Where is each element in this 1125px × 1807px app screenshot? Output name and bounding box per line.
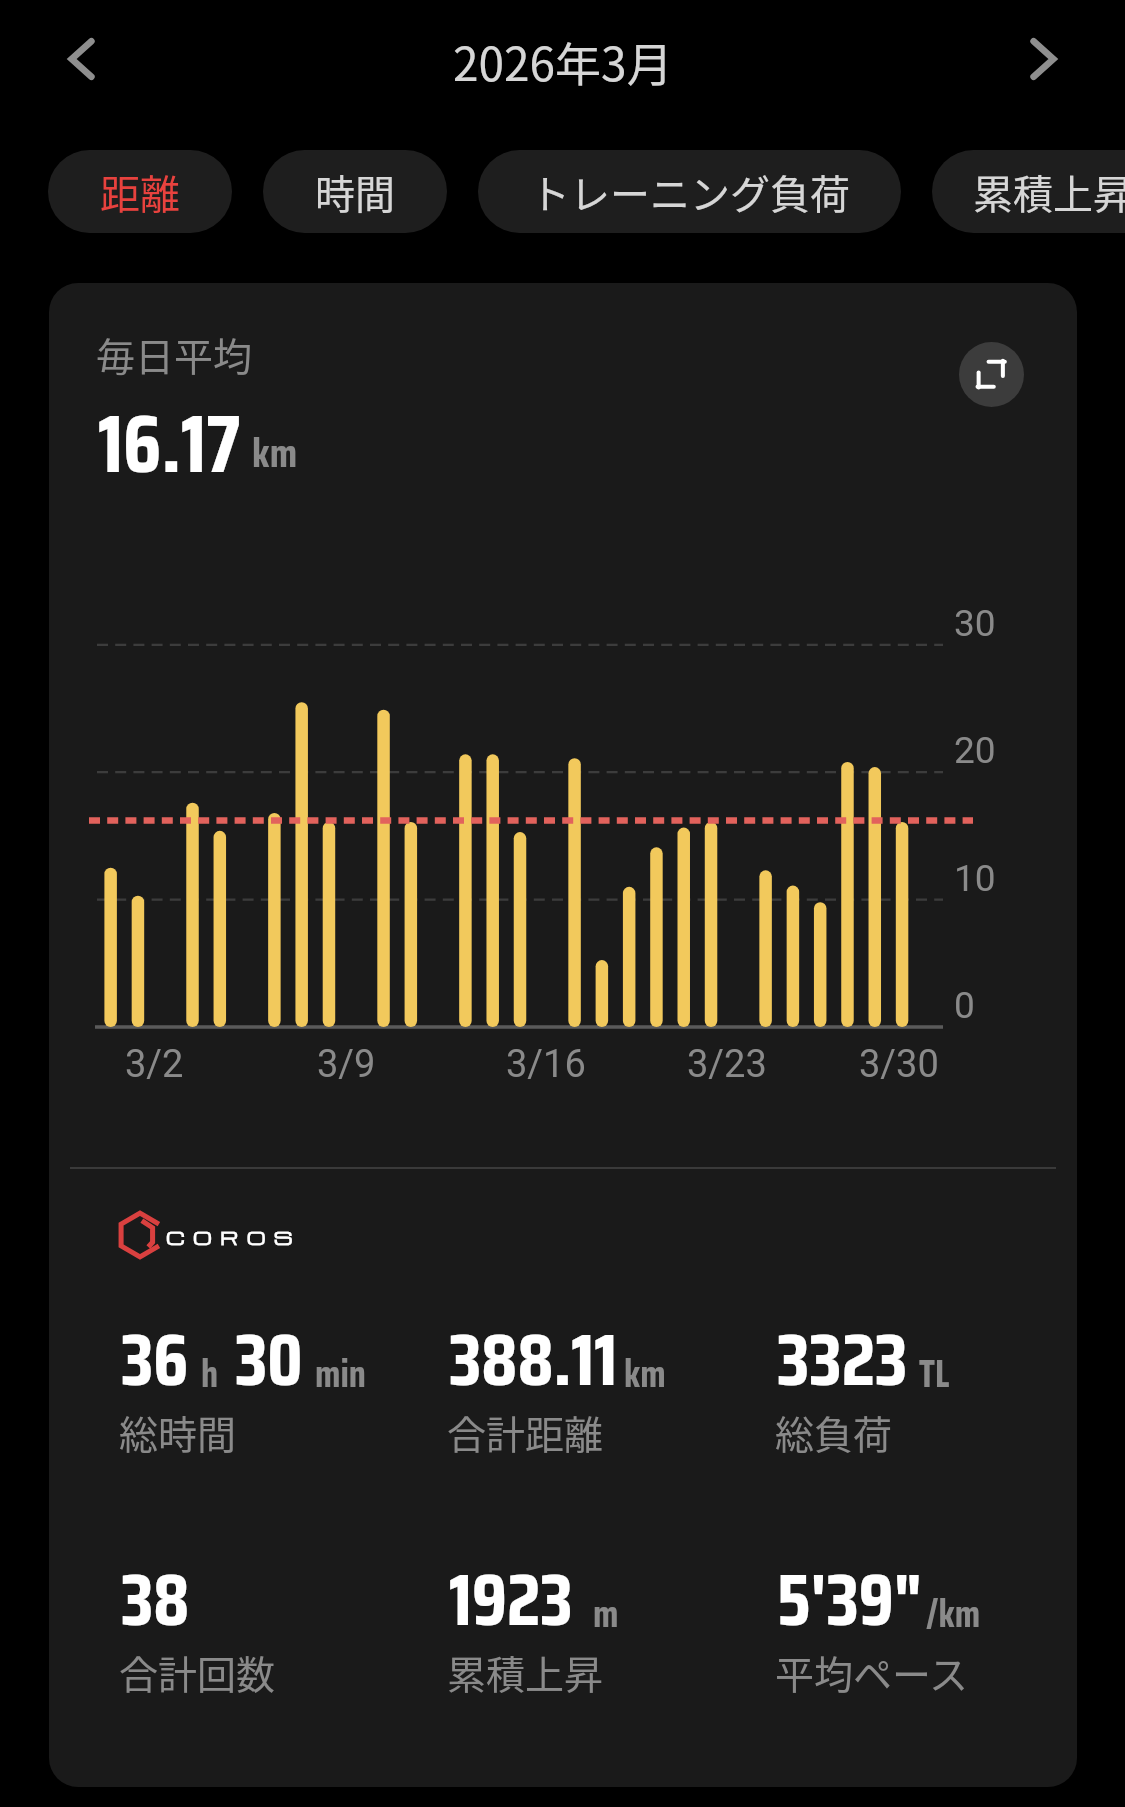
staticText: トレーニング負荷	[530, 163, 850, 221]
staticText: 3/30	[859, 1042, 939, 1087]
staticText: 累積上昇	[447, 1644, 604, 1700]
button[interactable]: Previous month	[55, 33, 107, 85]
staticText: km	[624, 1344, 666, 1404]
staticText: COROS	[166, 1224, 301, 1250]
button[interactable]: トレーニング負荷	[478, 150, 901, 233]
staticText: 総負荷	[775, 1404, 893, 1460]
staticText: 3/23	[687, 1042, 767, 1087]
staticText: 10	[954, 857, 996, 900]
staticText: /km	[926, 1584, 981, 1644]
staticText: 平均ペース	[775, 1644, 969, 1700]
staticText: 30	[235, 1301, 303, 1417]
staticText: 累積上昇	[973, 163, 1125, 221]
staticText: 36	[121, 1301, 189, 1417]
button[interactable]: Expand chart	[959, 342, 1024, 407]
staticText: 5'39"	[777, 1541, 923, 1657]
staticText: 20	[954, 729, 996, 772]
button[interactable]: Next month	[1018, 33, 1070, 85]
staticText: 合計距離	[447, 1404, 604, 1460]
staticText: 30	[954, 602, 996, 645]
staticText: 3323	[777, 1301, 908, 1417]
button[interactable]: 累積上昇	[932, 150, 1125, 233]
staticText: 毎日平均	[96, 326, 253, 382]
staticText: 合計回数	[119, 1644, 276, 1700]
button[interactable]: 時間	[263, 150, 447, 233]
staticText: 0	[954, 984, 975, 1027]
staticText: 38	[121, 1541, 190, 1657]
staticText: h	[201, 1344, 219, 1404]
staticText: TL	[919, 1344, 950, 1404]
staticText: 距離	[100, 163, 180, 221]
staticText: km	[252, 420, 298, 485]
staticText: 1923	[449, 1541, 573, 1657]
staticText: 時間	[315, 163, 395, 221]
staticText: 2026年3月	[453, 28, 673, 95]
staticText: 16.17	[98, 380, 241, 507]
staticText: 388.11	[449, 1301, 618, 1417]
button[interactable]: 距離	[48, 150, 232, 233]
staticText: min	[315, 1344, 366, 1404]
staticText: m	[593, 1584, 619, 1644]
staticText: 3/2	[125, 1042, 184, 1087]
staticText: 3/9	[317, 1042, 376, 1087]
staticText: 総時間	[119, 1404, 237, 1460]
staticText: 3/16	[506, 1042, 586, 1087]
